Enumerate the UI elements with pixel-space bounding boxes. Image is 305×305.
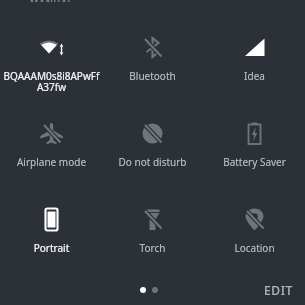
staticText: Bluetooth	[103, 69, 202, 83]
staticText: MANUAL	[30, 0, 74, 2]
staticText: Portrait	[2, 241, 101, 255]
staticText: Idea	[205, 69, 304, 83]
staticText: BQAAAM0s8i8APwFfA37fw	[2, 69, 101, 94]
button[interactable]: Airplane mode	[1, 109, 102, 195]
button[interactable]: Bluetooth	[102, 23, 203, 109]
button[interactable]: Mobile data Idea	[204, 23, 305, 109]
staticText: Battery Saver	[205, 155, 304, 169]
staticText: EDIT	[264, 282, 293, 298]
staticText: Do not disturb	[103, 155, 202, 169]
staticText: Airplane mode	[2, 155, 101, 169]
button[interactable]: Battery Saver	[204, 109, 305, 195]
staticText: Location	[205, 241, 304, 255]
button[interactable]: Wi-Fi	[1, 23, 102, 109]
button[interactable]: Do not disturb	[102, 109, 203, 195]
button[interactable]: EDIT	[252, 276, 305, 304]
button[interactable]: Portrait orientation lock	[1, 195, 102, 281]
staticText: Torch	[103, 241, 202, 255]
button[interactable]: Torch	[102, 195, 203, 281]
button[interactable]: Location	[204, 195, 305, 281]
